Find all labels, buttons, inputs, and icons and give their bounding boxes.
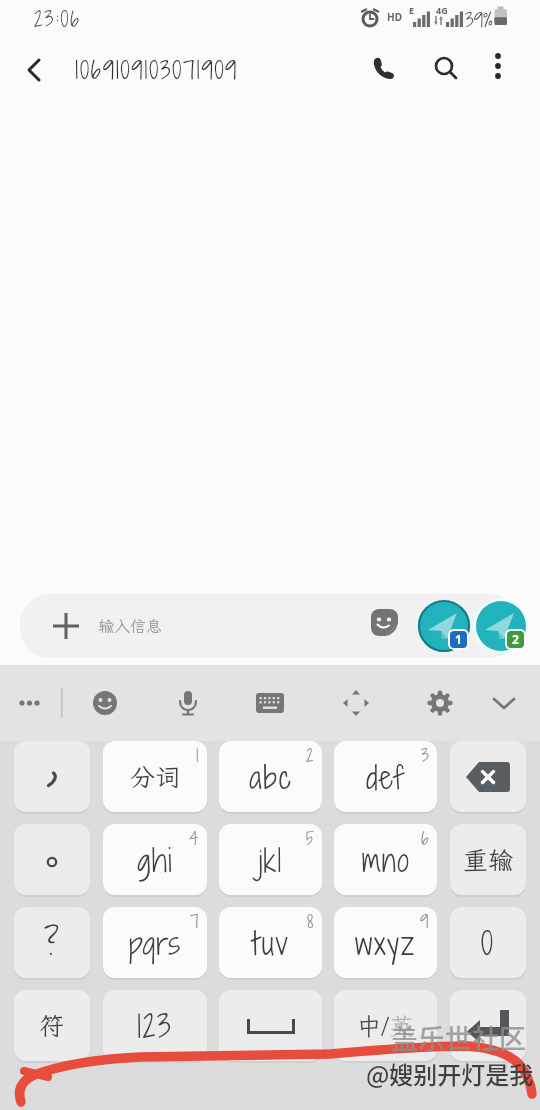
staticText: 23:06 [34, 5, 81, 34]
staticText: tuv [252, 921, 290, 965]
staticText: 2 [512, 631, 519, 647]
button[interactable]: wxyz [334, 907, 437, 978]
staticText: 符 [39, 1009, 65, 1042]
button[interactable]: ghi [103, 824, 207, 895]
staticText: 2 [306, 743, 314, 768]
button[interactable]: pqrs [103, 907, 207, 978]
button[interactable]: 符 [14, 990, 90, 1061]
button[interactable] [450, 741, 526, 812]
button[interactable] [419, 682, 461, 724]
staticText: @嫂别开灯是我 [366, 1056, 534, 1091]
button[interactable]: jkl [219, 824, 322, 895]
staticText: 6 [421, 826, 429, 851]
button[interactable] [12, 684, 50, 722]
button[interactable]: 分词 [103, 741, 207, 812]
staticText: 123 [137, 1004, 173, 1048]
staticText: 3 [421, 743, 429, 768]
staticText: 8 [307, 909, 314, 934]
staticText: 1 [196, 743, 199, 768]
button[interactable]: ? [14, 907, 90, 978]
button[interactable]: 1 [418, 600, 476, 658]
button[interactable] [14, 824, 90, 895]
staticText: ghi [137, 838, 174, 882]
button[interactable] [167, 682, 209, 724]
button[interactable]: abc [219, 741, 322, 812]
staticText: 4 [189, 826, 199, 851]
button[interactable]: 输入信息 [20, 594, 520, 658]
staticText: ? [44, 921, 61, 965]
staticText: 输入信息 [98, 615, 163, 636]
staticText: pqrs [129, 921, 182, 965]
staticText: 5 [306, 826, 314, 851]
staticText: E [409, 4, 415, 16]
staticText: 0 [481, 921, 495, 965]
staticText: mno [362, 838, 410, 882]
button[interactable]: 重输 [450, 824, 526, 895]
button[interactable] [14, 741, 90, 812]
button[interactable]: 中/英 [334, 990, 437, 1061]
button[interactable] [84, 682, 126, 724]
staticText: 中/英 [357, 1010, 414, 1042]
staticText: def [366, 755, 406, 799]
staticText: 1 [455, 631, 462, 647]
staticText: 7 [190, 909, 199, 934]
staticText: 39% [465, 6, 493, 34]
button[interactable] [424, 46, 468, 90]
button[interactable] [249, 682, 291, 724]
staticText: 重输 [463, 843, 514, 876]
button[interactable] [335, 682, 377, 724]
button[interactable] [362, 46, 406, 90]
staticText: 1069109103071909 [75, 53, 239, 86]
staticText: 分词 [130, 760, 181, 793]
staticText: HD [387, 10, 402, 24]
staticText: abc [249, 755, 293, 799]
staticText: jkl [259, 838, 283, 882]
button[interactable] [483, 682, 525, 724]
button[interactable]: 2 [475, 600, 533, 658]
button[interactable] [12, 48, 56, 92]
button[interactable]: 0 [450, 907, 526, 978]
staticText: 9 [420, 909, 429, 934]
button[interactable]: tuv [219, 907, 322, 978]
button[interactable]: 123 [103, 990, 207, 1061]
button[interactable] [219, 990, 322, 1061]
button[interactable] [478, 46, 518, 86]
staticText: 4G [436, 4, 448, 16]
staticText: 盖乐世社区 [391, 1018, 526, 1057]
button[interactable] [450, 990, 526, 1061]
staticText: wxyz [355, 921, 416, 965]
button[interactable]: mno [334, 824, 437, 895]
button[interactable]: def [334, 741, 437, 812]
button[interactable] [371, 609, 399, 637]
